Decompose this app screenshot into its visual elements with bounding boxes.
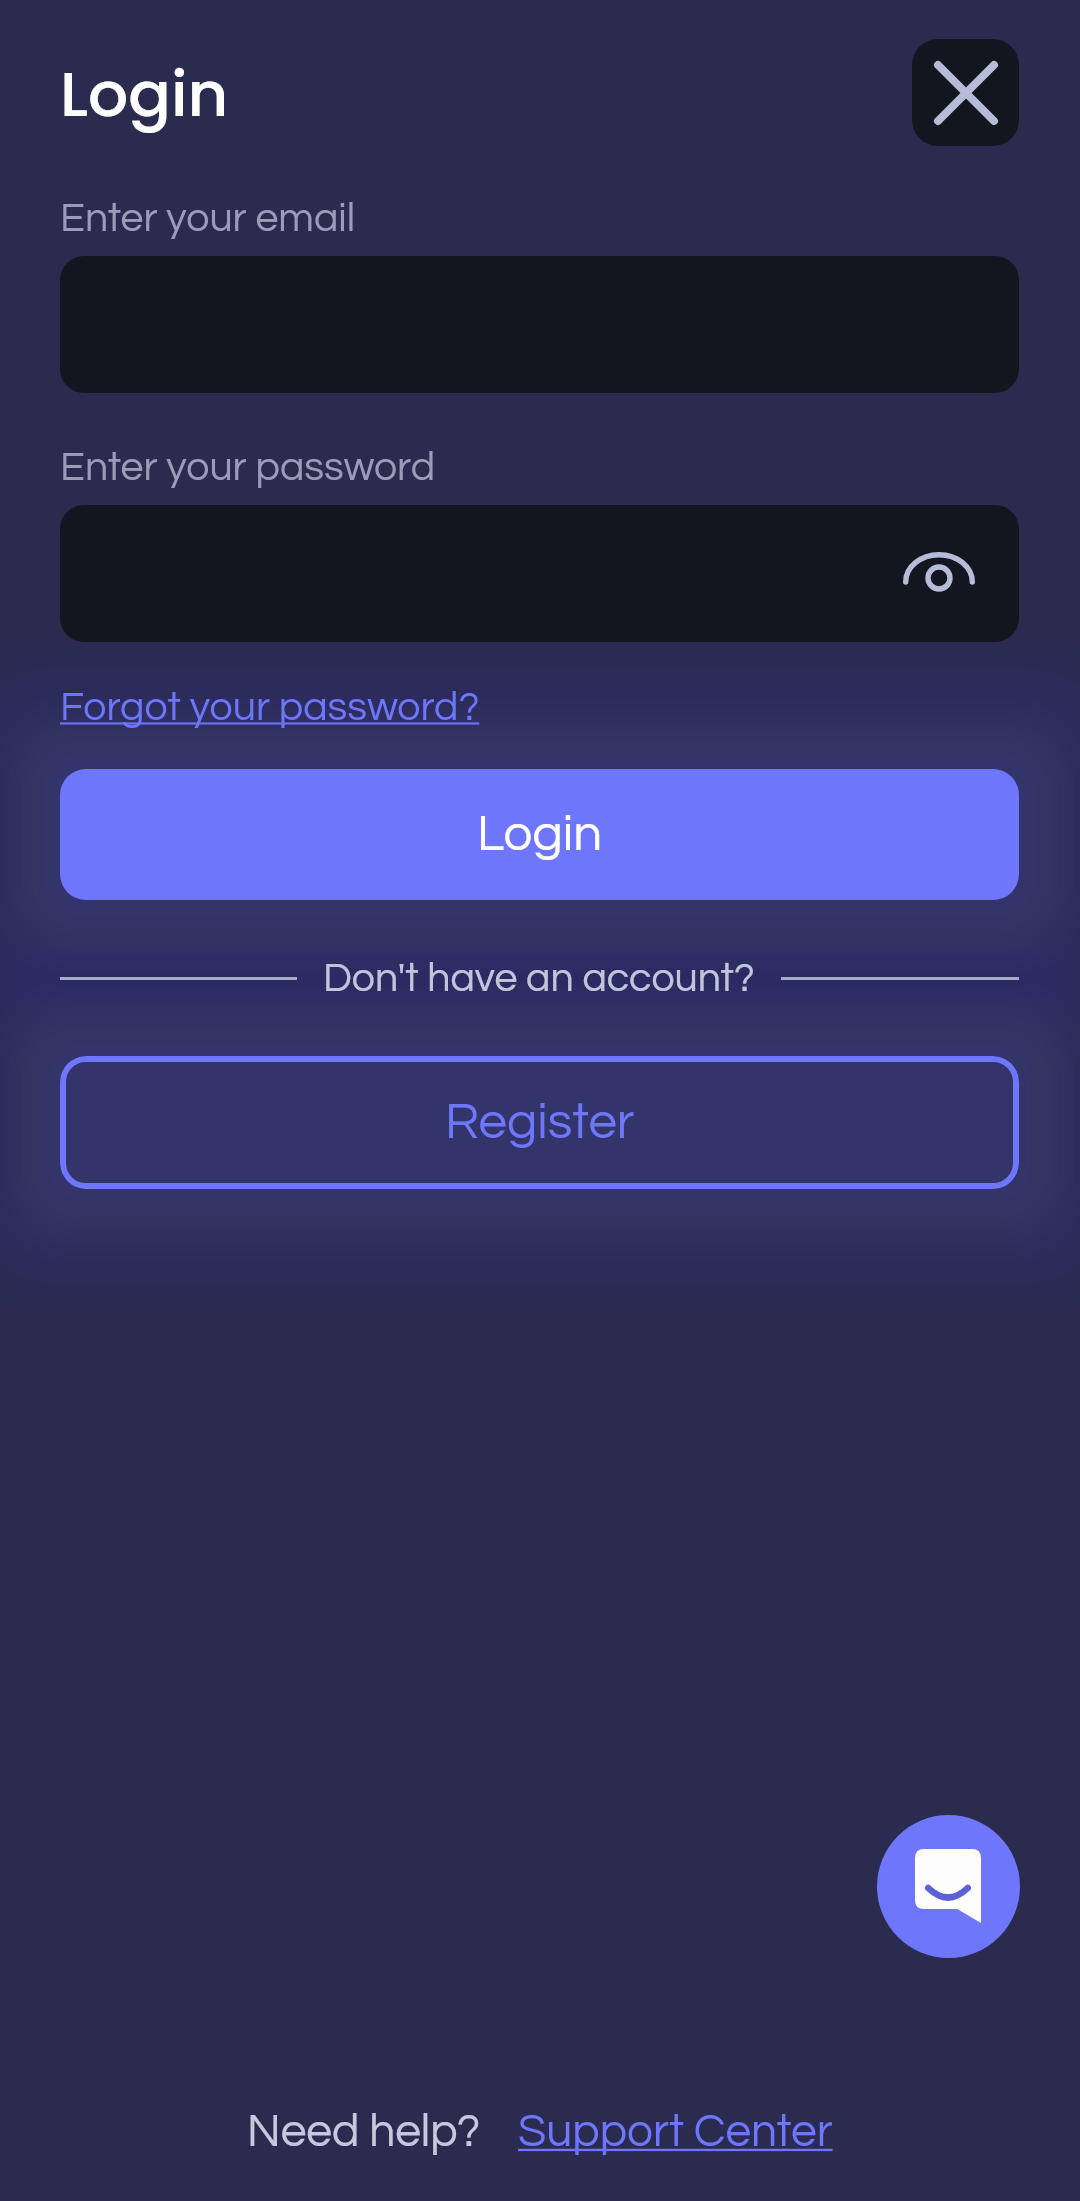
staticText: Register [445, 1096, 635, 1149]
staticText: Need help? [247, 2108, 481, 2155]
staticText: Enter your email [60, 197, 356, 239]
button[interactable]: Show password [60, 505, 1019, 642]
button[interactable]: Support Center [518, 2108, 833, 2155]
button[interactable]: Show password [896, 530, 984, 618]
button[interactable]: Forgot your password? [60, 686, 480, 728]
button[interactable]: Register [60, 1056, 1019, 1189]
staticText: Don't have an account? [323, 957, 755, 999]
button[interactable]: Close [912, 39, 1019, 146]
button[interactable]: Chat support [877, 1815, 1020, 1958]
staticText: Enter your password [60, 446, 436, 488]
staticText: Login [60, 50, 229, 138]
staticText: Login [477, 808, 603, 861]
button[interactable]: Login [60, 769, 1019, 900]
